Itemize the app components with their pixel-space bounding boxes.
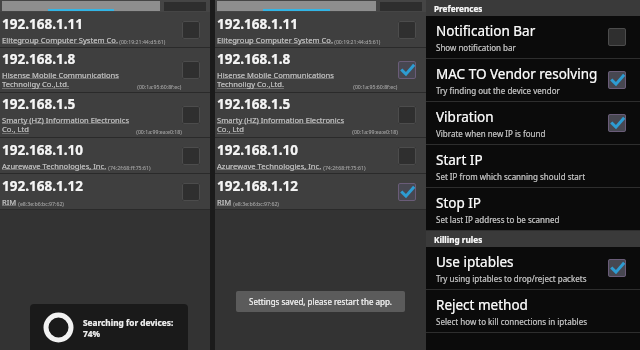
button[interactable]: 192.168.1.10 — [215, 138, 426, 173]
staticText: Preferences — [434, 3, 483, 14]
button[interactable]: Enabled — [398, 183, 416, 201]
staticText: Smarty (HZ) Information Electronics Co.,… — [2, 115, 135, 135]
staticText: Settings saved, please restart the app. — [249, 296, 392, 307]
staticText: RIM — [2, 197, 17, 207]
button[interactable]: 192.168.1.11 — [215, 12, 426, 47]
staticText: Vibrate when new IP is found — [436, 128, 546, 139]
staticText: (74:2f:68:ff:75:61) — [322, 164, 366, 171]
button[interactable]: Reject method — [426, 290, 640, 332]
staticText: 192.168.1.8 — [217, 50, 291, 68]
button[interactable]: Disabled — [182, 106, 200, 124]
staticText: RIM — [217, 197, 232, 207]
button[interactable]: Search field — [217, 1, 376, 11]
staticText: Vibration — [436, 108, 494, 126]
staticText: Select how to kill connections in iptabl… — [436, 316, 587, 327]
button[interactable]: 192.168.1.5 — [215, 93, 426, 137]
staticText: Set IP from which scanning should start — [436, 171, 586, 182]
staticText: Try finding out the device vendor — [436, 85, 560, 96]
button[interactable]: Enabled — [608, 114, 626, 132]
button[interactable]: Disabled — [182, 21, 200, 39]
staticText: 192.168.1.11 — [217, 15, 298, 33]
button[interactable]: Disabled — [398, 21, 416, 39]
button[interactable]: Enabled — [398, 61, 416, 79]
button[interactable]: Start IP — [426, 145, 640, 187]
button[interactable]: 192.168.1.10 — [0, 138, 210, 173]
button[interactable]: 192.168.1.8 — [215, 48, 426, 92]
button[interactable]: Disabled — [182, 61, 200, 79]
staticText: Try using iptables to drop/reject packet… — [436, 273, 587, 284]
button[interactable]: 192.168.1.12 — [215, 174, 426, 209]
button[interactable]: 192.168.1.8 — [0, 48, 210, 92]
staticText: 192.168.1.10 — [217, 141, 298, 159]
staticText: Elitegroup Computer System Co. — [217, 35, 333, 45]
staticText: 192.168.1.11 — [2, 15, 83, 33]
staticText: (e8:3e:b6:bc:97:62) — [232, 200, 279, 207]
staticText: Azurewave Technologies, Inc. — [2, 161, 107, 171]
button[interactable]: Notification Bar — [426, 16, 640, 58]
staticText: 192.168.1.10 — [2, 141, 83, 159]
button[interactable]: Stop IP — [426, 188, 640, 230]
button[interactable]: Vibration — [426, 102, 640, 144]
staticText: 192.168.1.12 — [217, 177, 298, 195]
staticText: MAC TO Vendor resolving — [436, 65, 598, 83]
staticText: Hisense Mobile Communications Technoligy… — [2, 70, 136, 90]
staticText: (00:19:21:44:d5:61) — [118, 38, 166, 45]
staticText: (00:1a:95:60:8f:ec) — [136, 83, 182, 90]
staticText: Show notification bar — [436, 42, 516, 53]
staticText: Azurewave Technologies, Inc. — [217, 161, 322, 171]
button[interactable]: Disabled — [398, 106, 416, 124]
staticText: Searching for devices: 74% — [83, 317, 188, 339]
staticText: 192.168.1.5 — [2, 95, 76, 113]
staticText: Start IP — [436, 151, 483, 169]
button[interactable]: Enabled — [608, 259, 626, 277]
button[interactable]: Disabled — [398, 147, 416, 165]
staticText: Reject method — [436, 296, 528, 314]
staticText: (e8:3e:b6:bc:97:62) — [17, 200, 64, 207]
staticText: (00:1a:99:ea:e0:18) — [351, 128, 398, 135]
button[interactable]: Enabled — [608, 71, 626, 89]
staticText: 192.168.1.5 — [217, 95, 291, 113]
button[interactable]: Search field — [2, 1, 160, 11]
staticText: Set last IP address to be scanned — [436, 214, 560, 225]
button[interactable]: 192.168.1.11 — [0, 12, 210, 47]
button[interactable]: 192.168.1.5 — [0, 93, 210, 137]
staticText: Killing rules — [434, 234, 483, 245]
button[interactable]: Disabled — [182, 147, 200, 165]
staticText: 192.168.1.12 — [2, 177, 83, 195]
staticText: Hisense Mobile Communications Technoligy… — [217, 70, 352, 90]
button[interactable]: 192.168.1.12 — [0, 174, 210, 209]
staticText: (00:1a:95:60:8f:ec) — [352, 83, 398, 90]
staticText: Stop IP — [436, 194, 482, 212]
staticText: (00:19:21:44:d5:61) — [333, 38, 381, 45]
staticText: Notification Bar — [436, 22, 536, 40]
staticText: 192.168.1.8 — [2, 50, 76, 68]
staticText: (00:1a:99:ea:e0:18) — [135, 128, 182, 135]
button[interactable]: Disabled — [608, 28, 626, 46]
staticText: (74:2f:68:ff:75:61) — [107, 164, 151, 171]
button[interactable]: Disabled — [182, 183, 200, 201]
button[interactable]: MAC TO Vendor resolving — [426, 59, 640, 101]
staticText: Smarty (HZ) Information Electronics Co.,… — [217, 115, 351, 135]
button[interactable]: Use iptables — [426, 247, 640, 289]
staticText: Use iptables — [436, 253, 514, 271]
staticText: Elitegroup Computer System Co. — [2, 35, 118, 45]
